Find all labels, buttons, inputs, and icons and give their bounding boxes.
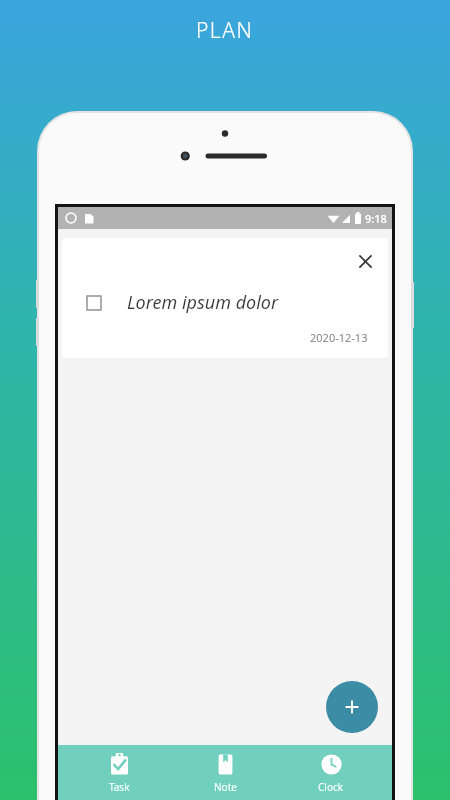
button[interactable]: Close <box>350 246 380 276</box>
button[interactable]: Note <box>180 745 270 800</box>
staticText: Lorem ipsum dolor <box>127 290 279 315</box>
staticText: 9:18 <box>365 211 387 226</box>
staticText: Clock <box>318 780 344 794</box>
button[interactable]: Add <box>326 681 378 733</box>
staticText: Note <box>214 780 237 794</box>
button[interactable]: Task <box>74 745 164 800</box>
staticText: Task <box>109 780 130 794</box>
button[interactable]: Toggle task done <box>83 292 105 314</box>
staticText: PLAN <box>196 16 254 45</box>
button[interactable]: Close <box>62 238 388 358</box>
button[interactable]: Clock <box>286 745 376 800</box>
staticText: 2020-12-13 <box>310 330 368 345</box>
